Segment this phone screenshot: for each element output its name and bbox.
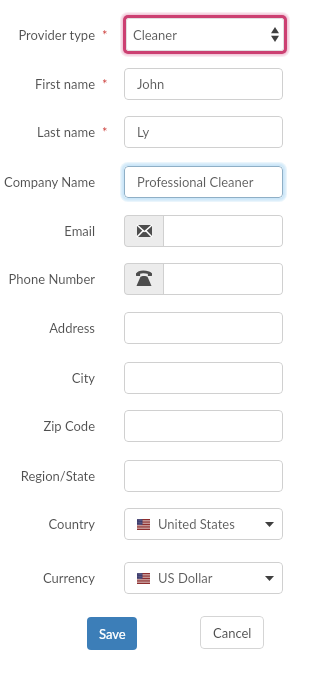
staticText: Professional Cleaner — [137, 174, 254, 190]
button[interactable]: Region/State — [124, 460, 283, 492]
staticText: Address — [49, 320, 95, 336]
staticText: Cancel — [213, 625, 252, 641]
staticText: John — [137, 76, 165, 92]
button[interactable]: Last name — [124, 116, 283, 148]
button[interactable]: Country — [124, 508, 283, 540]
button[interactable]: Currency — [124, 562, 283, 594]
staticText: Country — [48, 516, 95, 532]
staticText: United States — [158, 516, 235, 532]
button[interactable]: Provider type — [123, 15, 287, 54]
button[interactable]: First name — [124, 68, 283, 100]
button[interactable]: Address — [124, 312, 283, 344]
staticText: Currency — [42, 570, 95, 586]
staticText: Save — [99, 626, 126, 642]
button[interactable]: Professional Cleaner — [124, 166, 283, 198]
staticText: Phone Number — [8, 271, 95, 287]
button[interactable]: Email — [124, 215, 283, 247]
staticText: Region/State — [20, 468, 95, 484]
button[interactable]: Cancel — [200, 616, 264, 649]
staticText: First name — [34, 76, 95, 92]
button[interactable]: Phone Number — [124, 263, 283, 295]
staticText: Provider type — [18, 27, 95, 43]
staticText: Zip Code — [43, 418, 95, 434]
staticText: Cleaner — [133, 27, 177, 43]
staticText: * — [102, 124, 108, 140]
staticText: * — [102, 76, 108, 92]
staticText: Company Name — [4, 174, 95, 190]
button[interactable]: Save — [87, 617, 137, 650]
staticText: City — [71, 370, 95, 386]
staticText: US Dollar — [158, 570, 213, 586]
staticText: Last name — [36, 124, 95, 140]
staticText: Email — [64, 223, 95, 239]
staticText: * — [102, 27, 108, 43]
button[interactable]: Zip Code — [124, 410, 283, 442]
button[interactable]: City — [124, 362, 283, 394]
staticText: Ly — [137, 124, 150, 140]
